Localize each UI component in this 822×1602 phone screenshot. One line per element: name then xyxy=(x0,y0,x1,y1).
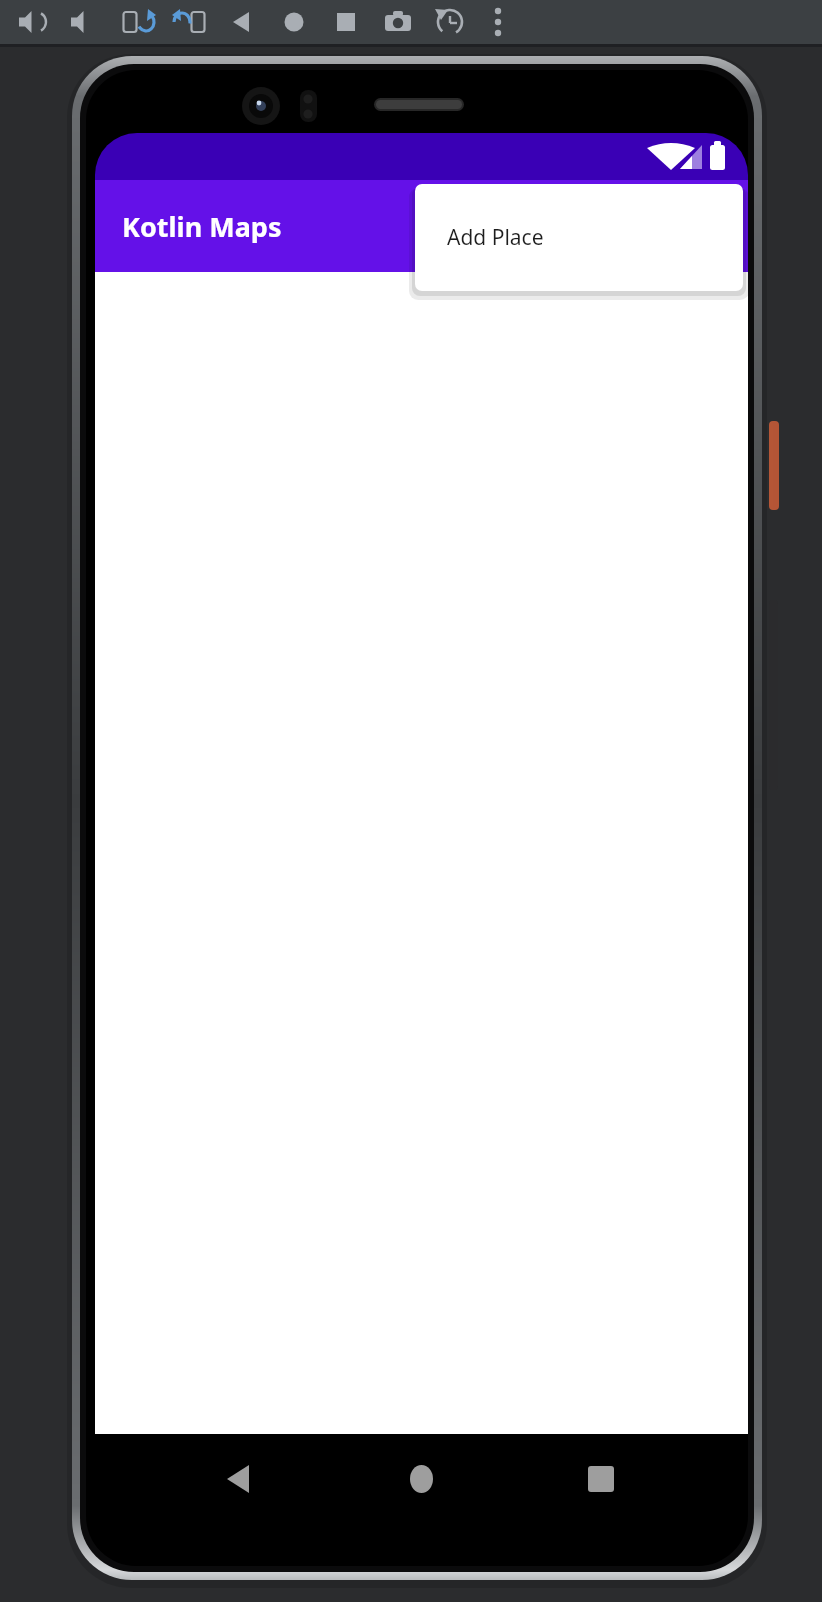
staticText: Add Place xyxy=(447,223,544,252)
button[interactable]: Back xyxy=(198,1439,278,1519)
staticText: Kotlin Maps xyxy=(122,208,282,245)
button[interactable]: Add Place xyxy=(415,184,743,291)
button[interactable]: Record screen xyxy=(428,2,472,46)
button[interactable]: Take screenshot xyxy=(376,2,420,46)
button[interactable]: Kotlin Maps xyxy=(95,180,748,272)
button[interactable]: Rotate left xyxy=(116,2,160,46)
button[interactable]: Back xyxy=(220,2,264,46)
button[interactable]: Rotate right xyxy=(168,2,212,46)
button[interactable]: Volume up xyxy=(8,2,52,46)
button[interactable]: More options xyxy=(476,2,520,46)
button[interactable]: Volume down xyxy=(60,2,104,46)
button[interactable]: Home xyxy=(381,1439,461,1519)
button[interactable]: Recent apps xyxy=(560,1439,640,1519)
button[interactable]: Overview xyxy=(324,2,368,46)
button[interactable]: Home xyxy=(272,2,316,46)
